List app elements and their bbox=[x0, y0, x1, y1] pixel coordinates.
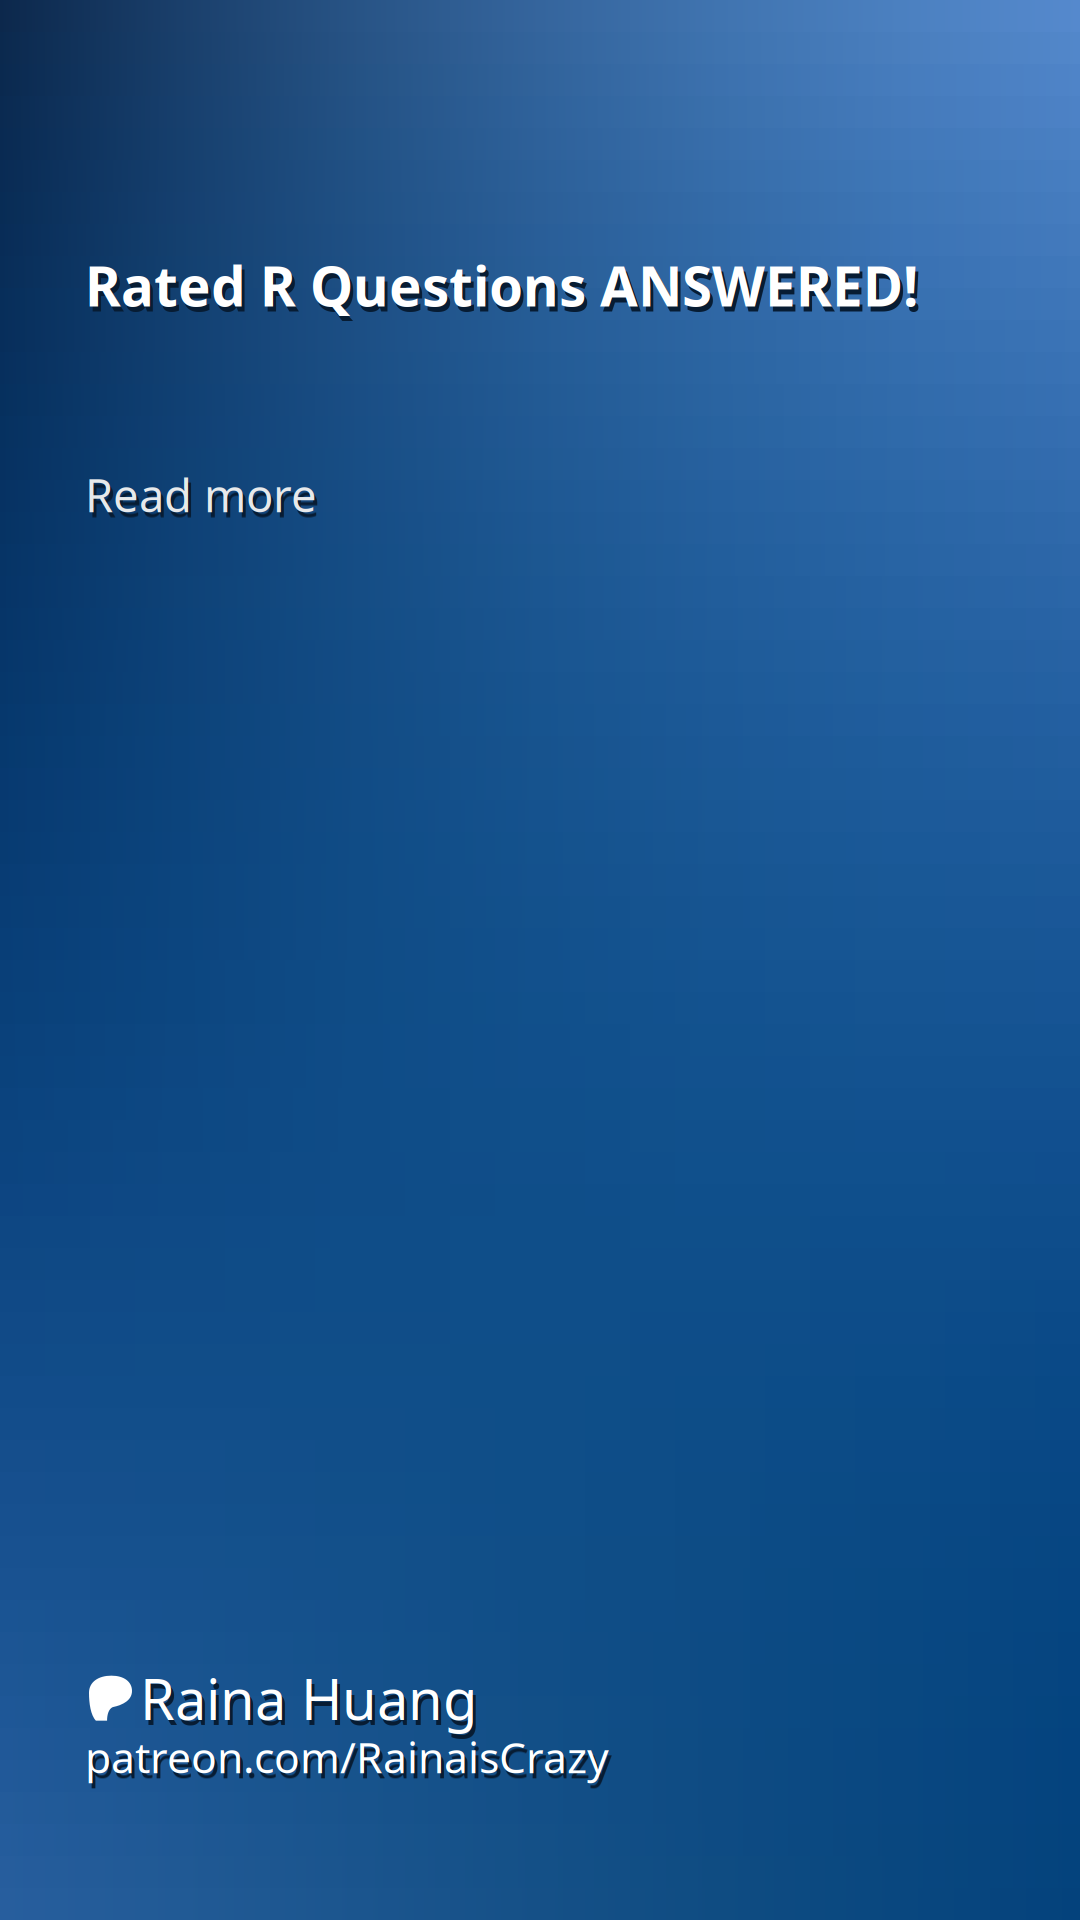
staticText: Rated R Questions ANSWERED! bbox=[85, 249, 918, 322]
staticText: Raina Huang bbox=[140, 1661, 477, 1735]
staticText: patreon.com/RainaisCrazy bbox=[85, 1728, 609, 1785]
staticText: Read more bbox=[85, 465, 317, 525]
button[interactable]: Read more bbox=[85, 465, 317, 525]
button[interactable]: Raina Huang on Patreon bbox=[85, 1661, 609, 1785]
